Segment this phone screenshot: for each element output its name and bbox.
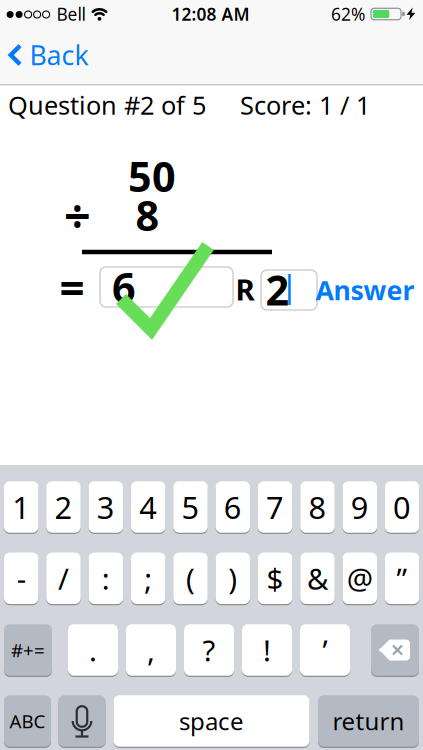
button[interactable]: 5 bbox=[173, 480, 208, 534]
staticText: ) bbox=[228, 559, 237, 598]
staticText: Back bbox=[29, 37, 88, 73]
button[interactable]: 8 bbox=[300, 480, 335, 534]
staticText: R bbox=[235, 269, 254, 308]
staticText: 12:08 AM bbox=[171, 2, 249, 25]
button[interactable]: . bbox=[68, 623, 118, 677]
button[interactable]: $ bbox=[258, 551, 292, 605]
staticText: 8 bbox=[135, 188, 159, 242]
staticText: 1 bbox=[12, 487, 30, 527]
staticText: / bbox=[58, 559, 69, 598]
staticText: 0 bbox=[393, 487, 411, 527]
staticText: 3 bbox=[97, 487, 115, 527]
staticText: 6 bbox=[112, 260, 136, 314]
staticText: 5 bbox=[181, 487, 199, 527]
button[interactable]: 0 bbox=[385, 480, 419, 534]
staticText: ABC bbox=[9, 709, 45, 733]
button[interactable]: ’ bbox=[300, 623, 350, 677]
button[interactable]: 6 bbox=[216, 480, 250, 534]
button[interactable]: 4 bbox=[131, 480, 165, 534]
staticText: . bbox=[89, 630, 97, 669]
staticText: & bbox=[307, 559, 328, 598]
button[interactable]: 3 bbox=[88, 480, 123, 534]
staticText: 62% bbox=[331, 2, 365, 25]
button[interactable]: 2 bbox=[46, 480, 81, 534]
button[interactable]: : bbox=[88, 551, 123, 605]
staticText: ÷ bbox=[64, 184, 91, 246]
staticText: Score: 1 / 1 bbox=[240, 88, 370, 122]
staticText: ( bbox=[186, 559, 195, 598]
staticText: $ bbox=[267, 559, 284, 598]
staticText: Bell bbox=[56, 2, 85, 25]
button[interactable]: ” bbox=[385, 551, 419, 605]
button[interactable]: return bbox=[318, 694, 419, 748]
staticText: ! bbox=[263, 630, 271, 669]
staticText: return bbox=[332, 705, 404, 737]
button[interactable]: Back bbox=[8, 40, 88, 70]
staticText: 2 bbox=[265, 262, 289, 317]
button[interactable]: Dictation bbox=[58, 694, 105, 748]
button[interactable]: , bbox=[126, 623, 176, 677]
staticText: 7 bbox=[266, 487, 284, 527]
button[interactable]: - bbox=[4, 551, 38, 605]
button[interactable]: ) bbox=[216, 551, 250, 605]
staticText: Answer bbox=[315, 272, 414, 308]
button[interactable]: ? bbox=[184, 623, 234, 677]
button[interactable]: space bbox=[113, 694, 309, 748]
button[interactable]: 7 bbox=[258, 480, 292, 534]
button[interactable]: Delete bbox=[371, 623, 419, 677]
staticText: ” bbox=[397, 559, 408, 598]
staticText: space bbox=[179, 705, 244, 737]
staticText: @ bbox=[347, 559, 373, 598]
button[interactable]: 1 bbox=[4, 480, 38, 534]
staticText: - bbox=[17, 559, 26, 598]
staticText: #+= bbox=[11, 638, 45, 662]
button[interactable]: Remainder answer field bbox=[261, 270, 317, 310]
staticText: 6 bbox=[224, 487, 242, 527]
button[interactable]: / bbox=[46, 551, 81, 605]
button[interactable]: ; bbox=[131, 551, 165, 605]
button[interactable]: ( bbox=[173, 551, 208, 605]
staticText: ; bbox=[144, 559, 152, 598]
staticText: , bbox=[147, 630, 155, 669]
staticText: ? bbox=[202, 630, 215, 669]
staticText: 50 bbox=[128, 149, 176, 203]
button[interactable]: #+= bbox=[4, 623, 52, 677]
staticText: 4 bbox=[139, 487, 157, 527]
staticText: : bbox=[102, 559, 110, 598]
staticText: = bbox=[59, 258, 84, 316]
staticText: 2 bbox=[54, 487, 72, 527]
staticText: 8 bbox=[308, 487, 326, 527]
button[interactable]: ABC bbox=[4, 694, 51, 748]
staticText: Question #2 of 5 bbox=[8, 88, 206, 122]
button[interactable]: & bbox=[300, 551, 335, 605]
button[interactable]: ! bbox=[242, 623, 292, 677]
staticText: ’ bbox=[322, 630, 327, 669]
button[interactable]: @ bbox=[343, 551, 377, 605]
button[interactable]: 9 bbox=[343, 480, 377, 534]
button[interactable]: Quotient answer field bbox=[100, 267, 233, 307]
staticText: 9 bbox=[351, 487, 369, 527]
